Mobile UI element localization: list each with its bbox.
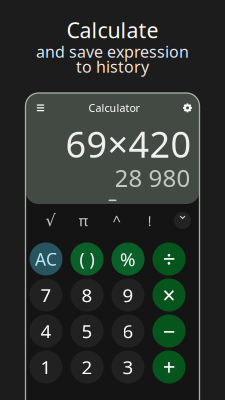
staticText: π xyxy=(78,211,88,230)
staticText: % xyxy=(120,247,136,271)
button[interactable]: % xyxy=(107,241,148,277)
staticText: 2 xyxy=(81,355,92,379)
button[interactable]: 2 xyxy=(66,349,107,385)
staticText: 9 xyxy=(122,283,133,307)
button[interactable]: AC xyxy=(25,241,66,277)
staticText: 5 xyxy=(81,319,92,343)
staticText: 8 xyxy=(81,283,92,307)
button[interactable]: Settings xyxy=(177,98,197,118)
button[interactable]: π xyxy=(67,204,100,241)
button[interactable]: 9 xyxy=(107,277,148,313)
button[interactable]: ( ) xyxy=(66,241,107,277)
staticText: 1 xyxy=(40,355,51,379)
button[interactable]: 1 xyxy=(25,349,66,385)
button[interactable]: 4 xyxy=(25,313,66,349)
button[interactable]: Menu xyxy=(30,98,50,118)
staticText: ^ xyxy=(112,211,120,230)
button[interactable]: 7 xyxy=(25,277,66,313)
staticText: 3 xyxy=(122,355,133,379)
staticText: 6 xyxy=(122,319,133,343)
button[interactable]: ! xyxy=(133,204,166,241)
staticText: ⌄ xyxy=(177,207,188,222)
button[interactable]: × xyxy=(148,277,189,313)
button[interactable]: 8 xyxy=(66,277,107,313)
staticText: − xyxy=(162,316,175,346)
button[interactable]: − xyxy=(148,313,189,349)
staticText: 7 xyxy=(40,283,51,307)
staticText: ! xyxy=(147,211,151,230)
staticText: √ xyxy=(45,211,55,230)
button[interactable]: ^ xyxy=(100,204,133,241)
button[interactable]: 3 xyxy=(107,349,148,385)
staticText: ÷ xyxy=(162,244,175,274)
staticText: 28 980 xyxy=(114,162,190,194)
button[interactable]: + xyxy=(148,349,189,385)
staticText: × xyxy=(162,280,175,310)
staticText: Calculate xyxy=(66,16,158,44)
button[interactable]: 6 xyxy=(107,313,148,349)
staticText: Calculator xyxy=(88,101,139,115)
staticText: 4 xyxy=(40,319,51,343)
staticText: to history xyxy=(76,56,149,77)
staticText: 69×420 xyxy=(65,120,191,168)
staticText: + xyxy=(162,352,175,382)
staticText: and save expression xyxy=(36,41,189,62)
staticText: ( ) xyxy=(79,247,94,270)
staticText: AC xyxy=(35,247,57,270)
button[interactable]: More functions xyxy=(166,204,199,241)
button[interactable]: ÷ xyxy=(148,241,189,277)
button[interactable]: 5 xyxy=(66,313,107,349)
button[interactable]: √ xyxy=(34,204,67,241)
